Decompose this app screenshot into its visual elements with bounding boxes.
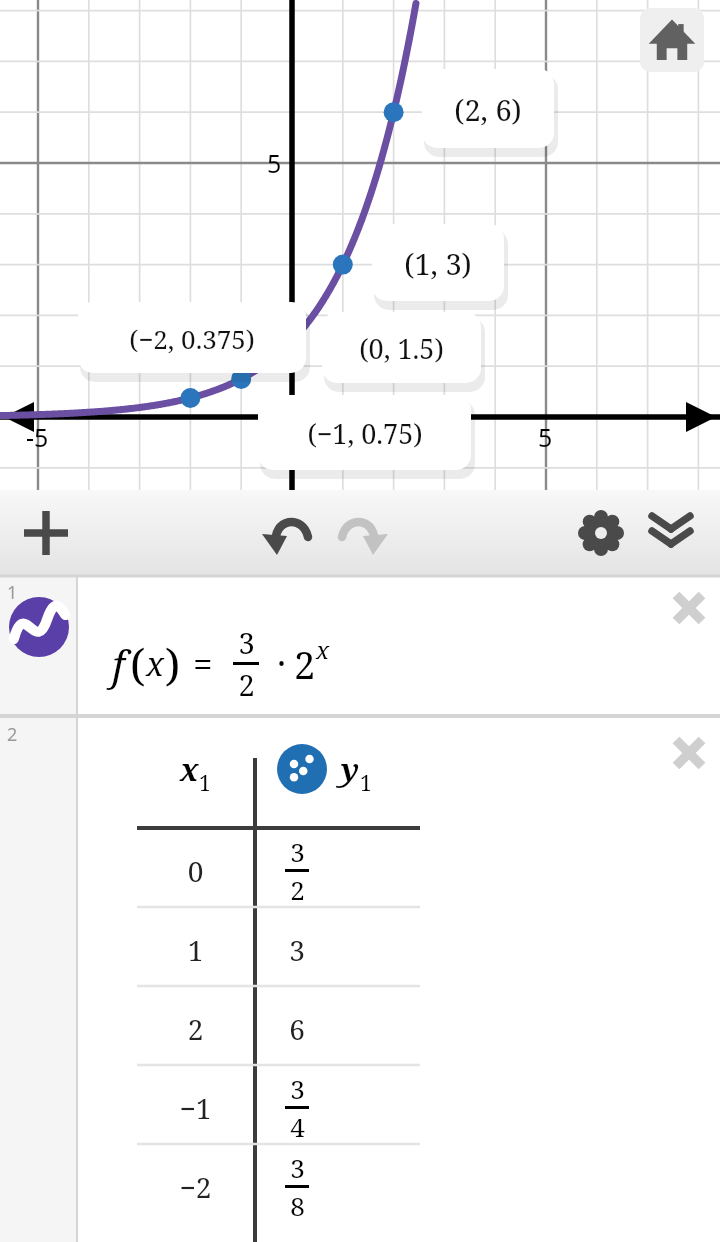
button[interactable]: Delete table bbox=[665, 729, 713, 777]
staticText: x bbox=[180, 748, 199, 790]
button[interactable]: Toggle graph visibility bbox=[9, 597, 69, 657]
button[interactable]: 1 bbox=[77, 910, 720, 989]
staticText: ) bbox=[165, 634, 181, 694]
staticText: 3 bbox=[290, 834, 305, 869]
staticText: = bbox=[193, 640, 213, 688]
staticText: 4 bbox=[290, 1109, 305, 1144]
button[interactable]: Undo bbox=[258, 501, 322, 565]
staticText: y bbox=[341, 748, 360, 790]
staticText: x bbox=[316, 633, 330, 666]
staticText: 0 bbox=[136, 852, 255, 890]
staticText: (−1, 0.75) bbox=[307, 415, 423, 452]
staticText: 3 bbox=[290, 1150, 305, 1185]
button[interactable]: Redo bbox=[328, 501, 392, 565]
staticText: f bbox=[112, 637, 125, 691]
button[interactable]: Delete expression 1 bbox=[665, 584, 713, 632]
staticText: 8 bbox=[290, 1188, 305, 1223]
staticText: (2, 6) bbox=[454, 90, 522, 129]
staticText: 1 bbox=[7, 580, 18, 605]
staticText: 2 bbox=[238, 665, 255, 704]
button[interactable]: −1 bbox=[77, 1068, 720, 1147]
staticText: (1, 3) bbox=[404, 244, 472, 283]
staticText: 1 bbox=[199, 769, 211, 798]
staticText: 2 bbox=[136, 1010, 255, 1048]
staticText: −2 bbox=[136, 1168, 255, 1206]
staticText: 2 bbox=[294, 638, 316, 690]
staticText: 6 bbox=[279, 1010, 315, 1048]
staticText: −1 bbox=[136, 1089, 255, 1127]
staticText: 3 bbox=[238, 623, 255, 662]
staticText: ( bbox=[130, 634, 146, 694]
staticText: 5 bbox=[538, 420, 553, 454]
button[interactable]: Point style bbox=[277, 744, 327, 794]
button[interactable]: Add expression bbox=[14, 501, 78, 565]
staticText: 3 bbox=[279, 931, 315, 969]
staticText: 2 bbox=[7, 722, 18, 747]
button[interactable]: −2 bbox=[77, 1147, 720, 1226]
button[interactable]: 2 bbox=[77, 989, 720, 1068]
staticText: · bbox=[277, 639, 286, 688]
staticText: 1 bbox=[360, 769, 372, 798]
staticText: 3 bbox=[290, 1071, 305, 1106]
button[interactable]: Settings bbox=[569, 501, 633, 565]
button[interactable]: Collapse list bbox=[639, 501, 703, 565]
staticText: 1 bbox=[136, 931, 255, 969]
staticText: (0, 1.5) bbox=[359, 330, 444, 367]
staticText: 5 bbox=[267, 146, 282, 180]
staticText: -5 bbox=[26, 420, 49, 454]
staticText: 2 bbox=[290, 872, 305, 907]
button[interactable]: 0 bbox=[77, 831, 720, 910]
button[interactable]: Home bbox=[640, 8, 704, 72]
staticText: (−2, 0.375) bbox=[129, 321, 255, 356]
staticText: x bbox=[146, 641, 165, 686]
